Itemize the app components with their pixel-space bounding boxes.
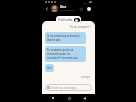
button[interactable]: Home xyxy=(65,94,73,102)
button[interactable]: Ecrire un message... xyxy=(45,84,92,91)
button[interactable]: Oui xyxy=(45,64,54,72)
staticText: Tu souhaite qu'on se rencontre pour se c… xyxy=(47,48,84,60)
button[interactable]: Recent apps xyxy=(49,94,57,102)
staticText: 9:41 xyxy=(83,1,88,4)
staticText: Ecrire un message... xyxy=(51,86,79,90)
button[interactable]: Tu souhaite qu'on se rencontre pour se c… xyxy=(45,46,86,62)
button[interactable]: Back xyxy=(80,94,88,102)
button[interactable]: Toggle xyxy=(74,18,80,22)
staticText: envoye xyxy=(81,75,91,79)
button[interactable]: More options xyxy=(86,6,92,12)
staticText: Oui xyxy=(47,66,52,70)
staticText: Vu a l'instant xyxy=(60,9,74,12)
button[interactable]: Call xyxy=(78,6,84,12)
button[interactable]: Je ne connais pas assez je donne pas xyxy=(45,32,86,44)
staticText: Tu as compris ? xyxy=(70,25,91,29)
staticText: Profil valide xyxy=(58,18,73,22)
button[interactable]: Profile photo xyxy=(51,5,58,12)
button[interactable]: Profil valide xyxy=(56,16,81,23)
staticText: Alex xyxy=(60,5,67,9)
staticText: Je ne connais pas assez je donne pas xyxy=(47,34,84,42)
button[interactable]: Back xyxy=(44,6,50,12)
